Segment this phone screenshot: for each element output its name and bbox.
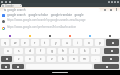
staticText: Google Search bbox=[5, 4, 19, 7]
staticText: google search bbox=[7, 8, 26, 12]
button[interactable]: s bbox=[14, 48, 23, 54]
button[interactable]: Emoji suggestion bbox=[60, 33, 80, 38]
staticText: d bbox=[29, 49, 31, 53]
button[interactable]: Enter bbox=[104, 48, 119, 54]
button[interactable]: j bbox=[69, 48, 78, 54]
staticText: . bbox=[95, 57, 96, 61]
button[interactable]: google search bbox=[3, 8, 100, 12]
button[interactable]: f bbox=[36, 48, 45, 54]
staticText: l bbox=[95, 49, 96, 53]
button[interactable]: . bbox=[91, 56, 100, 62]
button[interactable]: google search google scholar google tran… bbox=[0, 12, 120, 18]
staticText: b bbox=[62, 57, 64, 61]
button[interactable]: Emoji suggestion bbox=[100, 33, 120, 38]
button[interactable]: d bbox=[25, 48, 34, 54]
staticText: m bbox=[83, 57, 86, 61]
button[interactable]: g bbox=[47, 48, 56, 54]
button[interactable]: p bbox=[95, 39, 104, 46]
staticText: r bbox=[34, 41, 36, 45]
staticText: a bbox=[7, 49, 9, 53]
button[interactable]: h bbox=[58, 48, 67, 54]
staticText: z bbox=[18, 57, 20, 61]
button[interactable]: x bbox=[25, 56, 34, 62]
button[interactable]: l bbox=[91, 48, 100, 54]
button[interactable]: e bbox=[21, 39, 29, 46]
staticText: t bbox=[44, 41, 46, 45]
button[interactable]: m bbox=[80, 56, 89, 62]
staticText: k bbox=[84, 49, 86, 53]
button[interactable]: o bbox=[84, 39, 93, 46]
staticText: h bbox=[62, 49, 64, 53]
button[interactable]: b bbox=[58, 56, 67, 62]
button[interactable]: Google Search bbox=[1, 4, 22, 7]
button[interactable]: k bbox=[80, 48, 89, 54]
button[interactable]: Tabs bbox=[109, 8, 112, 11]
button[interactable]: Enter bbox=[94, 64, 119, 69]
staticText: p bbox=[99, 41, 101, 45]
staticText: https://www.google.com/search?q=google+s… bbox=[7, 18, 86, 22]
button[interactable]: Emoji suggestion bbox=[80, 33, 100, 38]
button[interactable]: t bbox=[41, 39, 49, 46]
button[interactable]: Comma bbox=[12, 64, 24, 69]
button[interactable]: y bbox=[51, 39, 60, 46]
staticText: j bbox=[73, 49, 74, 53]
button[interactable]: Backspace bbox=[106, 39, 119, 46]
staticText: google search google scholar google tran… bbox=[7, 13, 84, 17]
button[interactable]: i bbox=[73, 39, 82, 46]
button[interactable]: Shift bbox=[1, 56, 12, 62]
button[interactable]: Emoji suggestion bbox=[0, 33, 20, 38]
button[interactable]: c bbox=[36, 56, 45, 62]
button[interactable]: v bbox=[47, 56, 56, 62]
button[interactable]: a bbox=[4, 48, 12, 54]
staticText: y bbox=[55, 41, 57, 45]
staticText: v bbox=[51, 57, 53, 61]
staticText: s bbox=[18, 49, 20, 53]
button[interactable]: w bbox=[11, 39, 19, 46]
button[interactable]: q bbox=[1, 39, 9, 46]
button[interactable]: Symbols bbox=[1, 64, 10, 69]
staticText: n bbox=[73, 57, 75, 61]
staticText: q bbox=[4, 41, 6, 45]
staticText: u bbox=[66, 41, 68, 45]
staticText: https://www.google.com/preferences?hl=en… bbox=[7, 25, 76, 29]
staticText: g bbox=[51, 49, 53, 53]
button[interactable]: Emoji suggestion bbox=[40, 33, 60, 38]
button[interactable]: https://www.google.com/preferences?hl=en… bbox=[0, 25, 120, 32]
staticText: f bbox=[40, 49, 42, 53]
staticText: o bbox=[88, 41, 90, 45]
button[interactable]: Backspace bbox=[102, 56, 119, 62]
staticText: c bbox=[40, 57, 42, 61]
staticText: w bbox=[14, 41, 17, 45]
button[interactable]: n bbox=[69, 56, 78, 62]
staticText: i bbox=[77, 41, 78, 45]
button[interactable]: u bbox=[62, 39, 71, 46]
button[interactable]: More options bbox=[115, 8, 118, 11]
button[interactable]: r bbox=[31, 39, 39, 46]
button[interactable]: https://www.google.com/search?q=google+s… bbox=[0, 18, 120, 25]
button[interactable]: Share bbox=[103, 8, 106, 11]
staticText: e bbox=[24, 41, 26, 45]
button[interactable]: z bbox=[14, 56, 23, 62]
button[interactable]: Emoji suggestion bbox=[20, 33, 40, 38]
staticText: x bbox=[29, 57, 31, 61]
